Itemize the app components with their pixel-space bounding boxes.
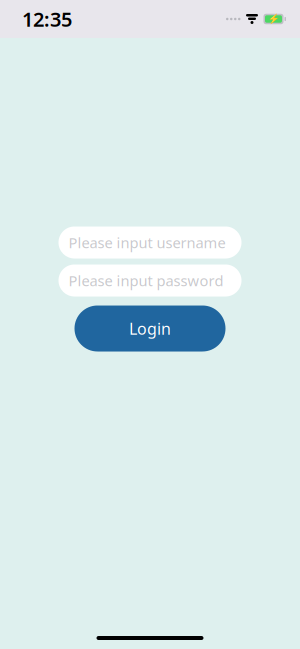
- staticText: Login: [129, 318, 171, 339]
- button[interactable]: Please input username: [58, 226, 241, 258]
- staticText: Please input username: [68, 233, 225, 252]
- staticText: Please input password: [68, 271, 223, 290]
- button[interactable]: Login: [74, 305, 225, 351]
- button[interactable]: Please input password: [58, 264, 241, 296]
- staticText: 12:35: [22, 6, 72, 32]
- staticText: ⚡: [267, 14, 279, 24]
